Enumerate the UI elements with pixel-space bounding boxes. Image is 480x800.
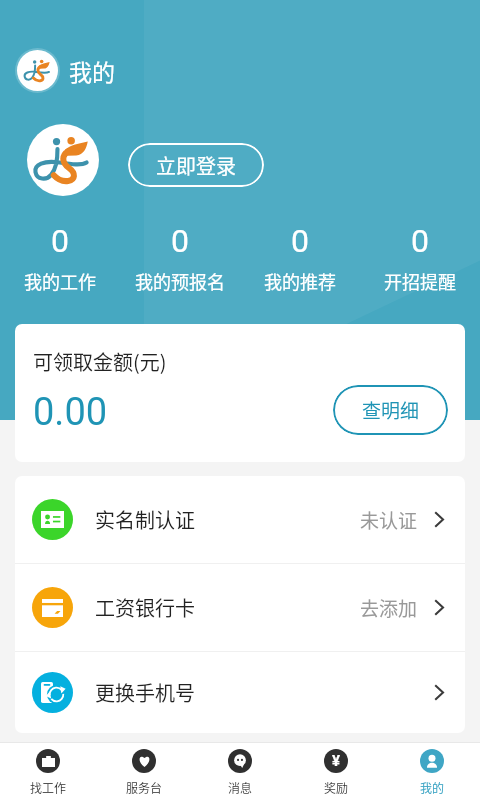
button[interactable]: 0 bbox=[360, 222, 480, 294]
staticText: 我的 bbox=[420, 779, 445, 796]
staticText: 0 bbox=[291, 222, 309, 260]
button[interactable]: 0 bbox=[240, 222, 360, 294]
staticText: 我的工作 bbox=[24, 268, 96, 294]
button[interactable]: 查明细 bbox=[333, 385, 448, 435]
staticText: 实名制认证 bbox=[95, 505, 195, 534]
staticText: 立即登录 bbox=[156, 151, 236, 180]
staticText: 可领取金额(元) bbox=[33, 347, 167, 376]
button[interactable]: 更换手机号 bbox=[15, 652, 465, 733]
staticText: 0 bbox=[171, 222, 189, 260]
button[interactable]: 消息 bbox=[192, 747, 288, 796]
button[interactable]: 0 bbox=[0, 222, 120, 294]
button[interactable]: ¥ bbox=[288, 747, 384, 796]
staticText: 我的推荐 bbox=[264, 268, 336, 294]
staticText: 我的 bbox=[69, 54, 115, 87]
staticText: 工资银行卡 bbox=[95, 593, 195, 622]
staticText: 0 bbox=[411, 222, 429, 260]
staticText: ¥ bbox=[332, 752, 341, 770]
button[interactable]: 找工作 bbox=[0, 747, 96, 796]
staticText: 找工作 bbox=[30, 779, 67, 796]
staticText: 去添加 bbox=[360, 594, 418, 622]
staticText: 奖励 bbox=[324, 779, 349, 796]
button[interactable]: 工资银行卡 bbox=[15, 564, 465, 651]
button[interactable]: 立即登录 bbox=[128, 143, 264, 187]
staticText: 开招提醒 bbox=[384, 268, 456, 294]
button[interactable]: 我的 bbox=[384, 747, 480, 796]
staticText: 未认证 bbox=[360, 506, 418, 534]
staticText: 服务台 bbox=[126, 779, 163, 796]
staticText: 查明细 bbox=[362, 396, 420, 424]
staticText: 消息 bbox=[228, 779, 253, 796]
button[interactable]: 服务台 bbox=[96, 747, 192, 796]
button[interactable]: 0 bbox=[120, 222, 240, 294]
staticText: 0.00 bbox=[33, 390, 108, 435]
staticText: 我的预报名 bbox=[135, 268, 225, 294]
button[interactable]: 实名制认证 bbox=[15, 476, 465, 563]
staticText: 0 bbox=[51, 222, 69, 260]
staticText: 更换手机号 bbox=[95, 678, 195, 707]
